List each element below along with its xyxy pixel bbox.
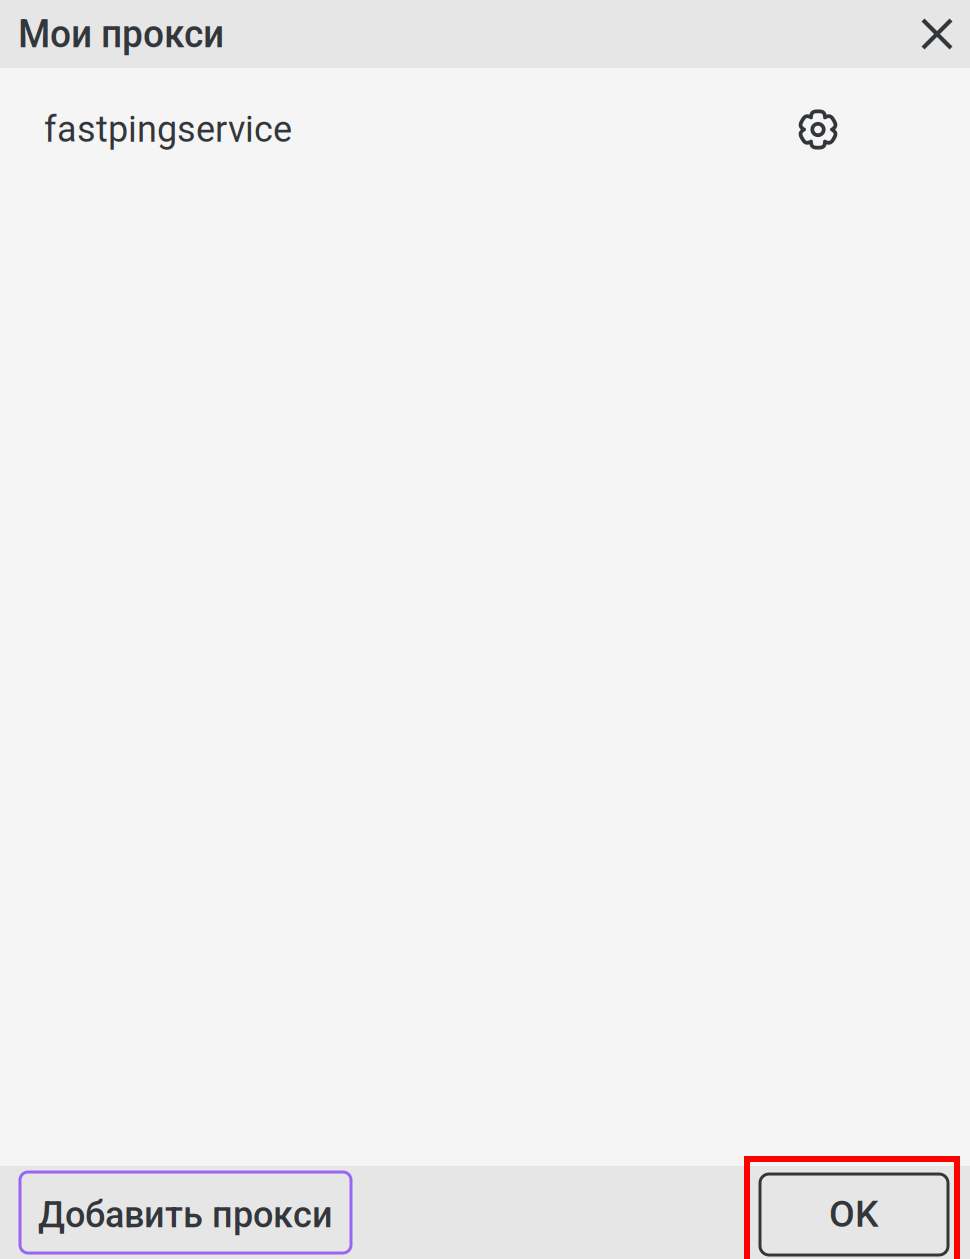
button[interactable]: fastpingservice	[0, 68, 970, 191]
staticText: Мои прокси	[18, 11, 224, 57]
staticText: Добавить прокси	[38, 1194, 333, 1236]
staticText: OK	[829, 1192, 879, 1236]
button[interactable]: Закрыть	[906, 3, 968, 65]
button[interactable]: OK	[747, 1159, 957, 1259]
button[interactable]: Добавить прокси	[20, 1172, 351, 1253]
staticText: fastpingservice	[44, 108, 292, 151]
